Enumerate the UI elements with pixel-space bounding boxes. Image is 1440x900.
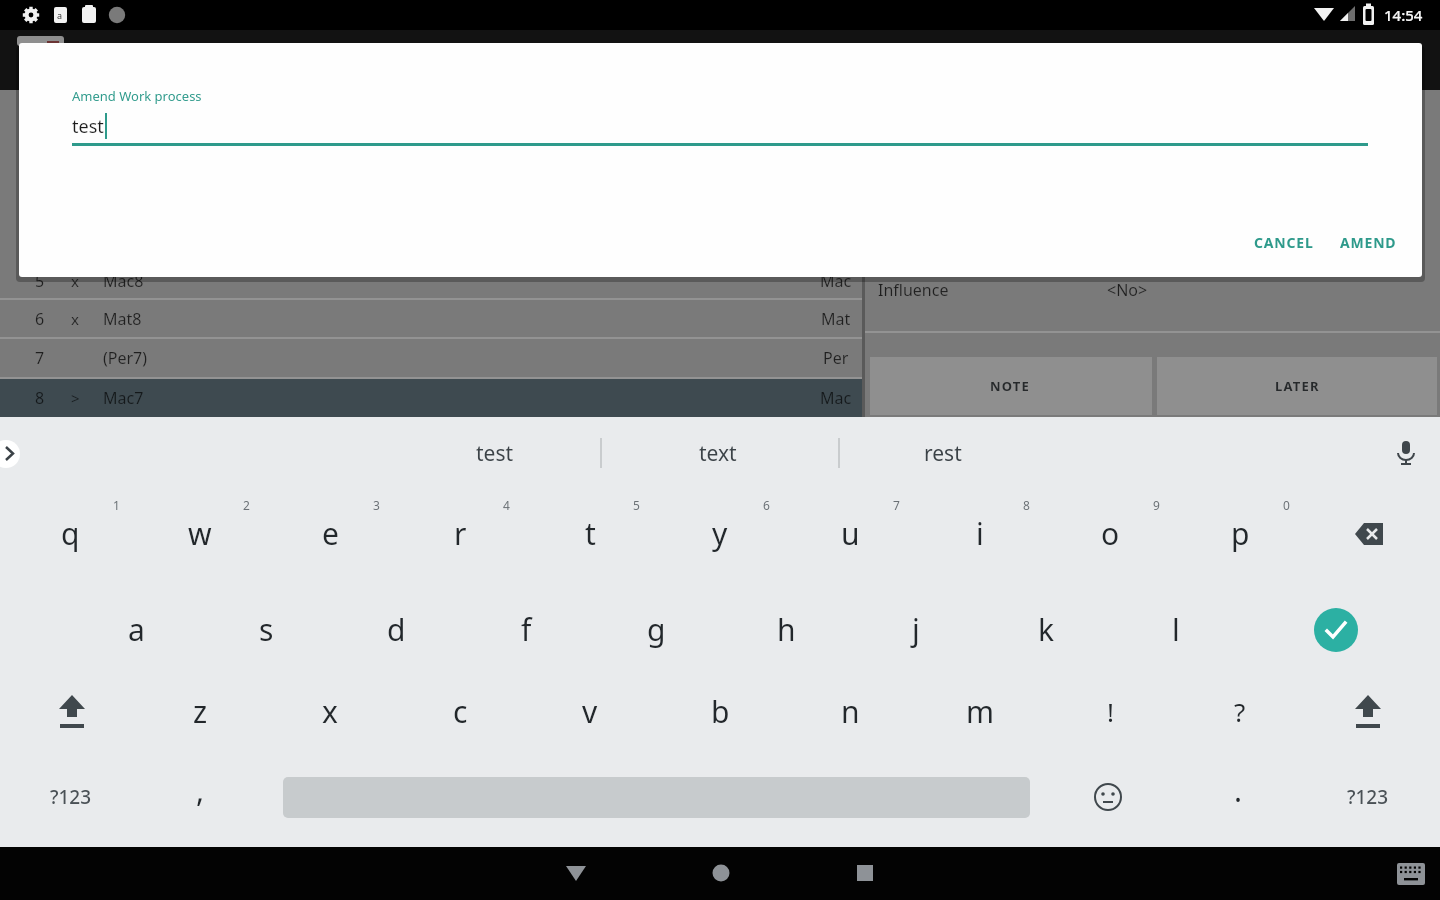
staticText: x <box>71 271 79 291</box>
staticText: Mac8 <box>103 270 144 292</box>
button[interactable]: AMEND <box>1318 222 1418 262</box>
staticText: 8 <box>35 387 45 409</box>
staticText: ?123 <box>50 784 92 810</box>
button[interactable]: n <box>790 667 910 755</box>
button[interactable]: c <box>400 667 520 755</box>
button[interactable]: x <box>270 667 390 755</box>
button[interactable]: m <box>920 667 1040 755</box>
staticText: 6 <box>763 497 770 513</box>
staticText: Influence <box>878 279 949 301</box>
staticText: 4 <box>503 497 510 513</box>
staticText: Mac7 <box>103 387 144 409</box>
staticText: z <box>193 691 208 732</box>
button[interactable] <box>701 853 741 893</box>
staticText: 6 <box>35 308 45 330</box>
staticText: t <box>585 513 596 554</box>
button[interactable]: test <box>385 432 605 474</box>
staticText: k <box>1038 609 1055 650</box>
staticText: 0 <box>1283 497 1290 513</box>
button[interactable]: f <box>466 585 586 673</box>
button[interactable] <box>1392 856 1432 892</box>
button[interactable]: s <box>206 585 326 673</box>
button[interactable] <box>845 853 885 893</box>
button[interactable]: b <box>660 667 780 755</box>
staticText: l <box>1172 609 1180 650</box>
staticText: > <box>71 388 80 408</box>
button[interactable]: l <box>1116 585 1236 673</box>
button[interactable]: h <box>726 585 846 673</box>
staticText: CANCEL <box>1254 233 1314 252</box>
button[interactable]: ?123 <box>11 757 131 837</box>
staticText: LATER <box>1275 377 1320 395</box>
button[interactable]: CANCEL <box>1229 222 1339 262</box>
button[interactable]: rest <box>833 432 1053 474</box>
staticText: NOTE <box>990 377 1031 395</box>
button[interactable]: k <box>986 585 1106 673</box>
button[interactable] <box>1340 505 1400 561</box>
button[interactable]: ?123 <box>1308 757 1428 837</box>
staticText: ! <box>1107 694 1114 729</box>
button[interactable]: g <box>596 585 716 673</box>
staticText: x <box>322 691 338 732</box>
button[interactable]: i <box>920 489 1040 577</box>
staticText: e <box>322 513 339 554</box>
staticText: Mac <box>820 270 852 292</box>
staticText: 2 <box>243 497 250 513</box>
button[interactable] <box>1157 357 1437 415</box>
staticText: Per <box>823 347 849 369</box>
staticText: r <box>454 513 467 554</box>
staticText: 7 <box>35 347 45 369</box>
button[interactable]: . <box>1178 750 1298 830</box>
button[interactable]: d <box>336 585 456 673</box>
staticText: rest <box>924 439 962 468</box>
staticText: i <box>976 513 984 554</box>
button[interactable]: o <box>1050 489 1170 577</box>
staticText: j <box>912 609 920 650</box>
button[interactable]: text <box>608 432 828 474</box>
staticText: 5 <box>35 270 45 292</box>
staticText: Amend Work process <box>72 87 202 105</box>
button[interactable] <box>870 357 1152 415</box>
button[interactable] <box>1078 767 1138 827</box>
button[interactable]: v <box>530 667 650 755</box>
button[interactable] <box>556 853 596 893</box>
button[interactable]: u <box>790 489 910 577</box>
staticText: 9 <box>1153 497 1160 513</box>
button[interactable]: z <box>140 667 260 755</box>
button[interactable]: r <box>400 489 520 577</box>
button[interactable] <box>0 440 20 468</box>
staticText: <No> <box>1107 279 1148 301</box>
staticText: ? <box>1234 694 1246 729</box>
staticText: h <box>777 609 796 650</box>
button[interactable]: e <box>270 489 390 577</box>
staticText: o <box>1101 513 1120 554</box>
button[interactable] <box>1338 683 1398 739</box>
staticText: 14:54 <box>1384 5 1423 25</box>
button[interactable]: a <box>76 585 196 673</box>
staticText: u <box>841 513 860 554</box>
staticText: Mat <box>821 308 851 330</box>
staticText: 8 <box>1023 497 1030 513</box>
button[interactable]: q <box>10 489 130 577</box>
button[interactable]: j <box>856 585 976 673</box>
button[interactable]: ! <box>1050 667 1170 755</box>
staticText: b <box>711 691 730 732</box>
staticText: q <box>61 513 80 554</box>
staticText: AMEND <box>1340 233 1397 252</box>
button[interactable] <box>1314 608 1358 652</box>
button[interactable]: , <box>140 750 260 830</box>
staticText: s <box>259 609 274 650</box>
button[interactable] <box>1392 438 1420 468</box>
button[interactable]: p <box>1180 489 1300 577</box>
button[interactable] <box>42 683 102 739</box>
button[interactable]: w <box>140 489 260 577</box>
button[interactable]: ? <box>1180 667 1300 755</box>
button[interactable]: t <box>530 489 650 577</box>
staticText: 3 <box>373 497 380 513</box>
staticText: test <box>72 114 104 139</box>
button[interactable]: y <box>660 489 780 577</box>
staticText: text <box>699 439 737 468</box>
staticText: . <box>1234 770 1243 811</box>
button[interactable] <box>0 379 862 417</box>
